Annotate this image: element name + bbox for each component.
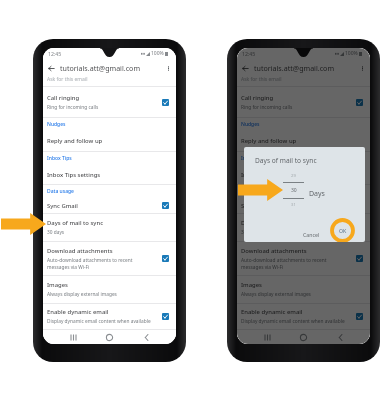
staticText: Days of mail to sync: [241, 219, 298, 227]
button[interactable]: Download attachments: [237, 242, 370, 275]
button[interactable]: Reply and follow up: [237, 131, 370, 151]
staticText: 12:45: [48, 50, 62, 57]
staticText: Data usage: [47, 188, 74, 195]
button[interactable]: Back: [334, 331, 347, 344]
staticText: Ask for this email: [47, 76, 88, 83]
staticText: Inbox Tips: [47, 155, 72, 162]
staticText: Enable dynamic email: [47, 308, 109, 316]
staticText: Days of mail to sync: [255, 156, 317, 165]
staticText: 30: [291, 187, 297, 194]
button[interactable]: Enable dynamic email: [43, 304, 176, 329]
staticText: Sync Gmail: [241, 202, 272, 210]
button[interactable]: Download attachments: [43, 242, 176, 275]
button[interactable]: Days of mail to sync: [43, 214, 176, 241]
staticText: 12:45: [242, 50, 256, 57]
button[interactable]: OK: [330, 218, 355, 242]
staticText: Call ringing: [241, 94, 274, 102]
staticText: Always display external images: [47, 291, 117, 298]
button[interactable]: Call ringing: [237, 87, 370, 117]
button[interactable]: Images: [43, 276, 176, 303]
button[interactable]: Cancel: [300, 229, 323, 240]
button[interactable]: Back: [47, 64, 56, 73]
staticText: Images: [241, 281, 262, 289]
button[interactable]: Images: [237, 276, 370, 303]
staticText: 100%: [151, 50, 164, 57]
button[interactable]: Sync Gmail: [43, 198, 176, 213]
staticText: 30 days: [241, 229, 259, 236]
staticText: Days: [309, 189, 325, 199]
staticText: Reply and follow up: [241, 137, 297, 145]
button[interactable]: Reply and follow up: [43, 131, 176, 151]
button[interactable]: Inbox Tips settings: [237, 165, 370, 184]
button[interactable]: Enable dynamic email: [237, 304, 370, 329]
button[interactable]: Home: [103, 331, 116, 344]
staticText: Inbox Tips settings: [47, 171, 101, 179]
staticText: Ask for this email: [241, 76, 282, 83]
staticText: tutorials.att@gmail.com: [254, 63, 335, 73]
staticText: Reply and follow up: [47, 137, 103, 145]
staticText: Inbox Tips settings: [241, 171, 295, 179]
button[interactable]: Days of mail to sync: [237, 214, 370, 241]
staticText: 30 days: [47, 229, 65, 236]
staticText: tutorials.att@gmail.com: [60, 63, 141, 73]
button[interactable]: Recents: [261, 331, 274, 344]
staticText: Inbox Tips: [241, 155, 266, 162]
button[interactable]: More options: [164, 64, 173, 73]
staticText: Call ringing: [47, 94, 80, 102]
staticText: 29: [291, 173, 296, 179]
staticText: Ring for incoming calls: [241, 104, 293, 111]
staticText: Auto-download attachments to recent mess…: [241, 257, 327, 271]
staticText: Sync Gmail: [47, 202, 78, 210]
staticText: 100%: [345, 50, 358, 57]
button[interactable]: Back: [241, 64, 250, 73]
button[interactable]: Call ringing: [43, 87, 176, 117]
button[interactable]: More options: [358, 64, 367, 73]
staticText: Images: [47, 281, 68, 289]
staticText: Display dynamic email content when avail…: [47, 318, 151, 325]
button[interactable]: Sync Gmail: [237, 198, 370, 213]
staticText: Nudges: [47, 121, 66, 128]
button[interactable]: Inbox Tips settings: [43, 165, 176, 184]
staticText: Cancel: [303, 231, 320, 238]
staticText: Enable dynamic email: [241, 308, 303, 316]
staticText: Auto-download attachments to recent mess…: [47, 257, 133, 271]
staticText: Download attachments: [241, 247, 307, 255]
staticText: 31: [291, 202, 296, 208]
staticText: Nudges: [241, 121, 260, 128]
staticText: Days of mail to sync: [47, 219, 104, 227]
button[interactable]: Back: [140, 331, 153, 344]
button[interactable]: Recents: [67, 331, 80, 344]
staticText: Ring for incoming calls: [47, 104, 99, 111]
staticText: Display dynamic email content when avail…: [241, 318, 345, 325]
staticText: Download attachments: [47, 247, 113, 255]
staticText: Always display external images: [241, 291, 311, 298]
staticText: OK: [339, 227, 347, 234]
button[interactable]: Home: [297, 331, 310, 344]
